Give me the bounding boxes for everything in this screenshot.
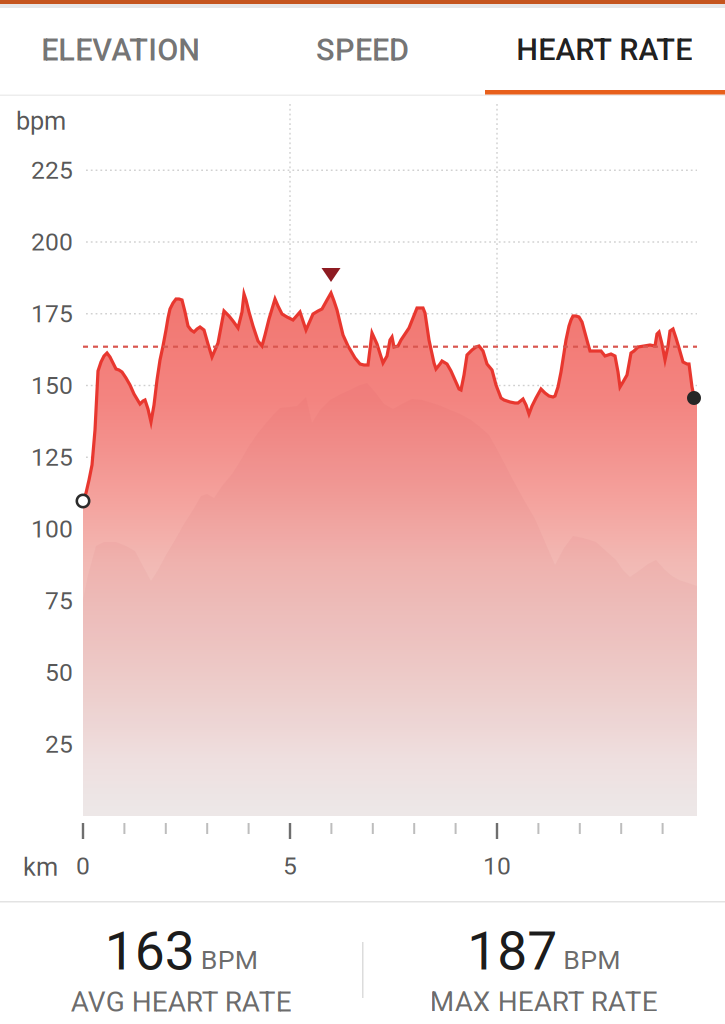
staticText: 50 (45, 658, 73, 687)
staticText: 150 (31, 371, 73, 400)
staticText: bpm (16, 106, 66, 136)
staticText: MAX HEART RATE (430, 985, 658, 1018)
staticText: HEART RATE (516, 32, 692, 68)
staticText: SPEED (316, 32, 409, 68)
staticText: BPM (563, 944, 620, 975)
staticText: 200 (31, 227, 73, 256)
staticText: AVG HEART RATE (71, 985, 292, 1018)
staticText: 5 (283, 851, 297, 880)
button[interactable]: SPEED (242, 8, 483, 92)
staticText: 100 (31, 514, 73, 543)
staticText: 10 (483, 851, 511, 880)
staticText: 0 (76, 851, 90, 880)
staticText: 163 (105, 920, 195, 982)
staticText: km (23, 852, 58, 882)
staticText: 125 (31, 443, 73, 472)
staticText: 75 (45, 586, 73, 615)
staticText: 225 (31, 156, 73, 185)
staticText: BPM (201, 944, 258, 975)
staticText: 175 (31, 299, 73, 328)
staticText: 25 (45, 730, 73, 759)
staticText: 187 (467, 920, 557, 982)
staticText: ELEVATION (41, 32, 200, 68)
button[interactable]: HEART RATE (483, 8, 725, 92)
button[interactable]: ELEVATION (0, 8, 242, 92)
